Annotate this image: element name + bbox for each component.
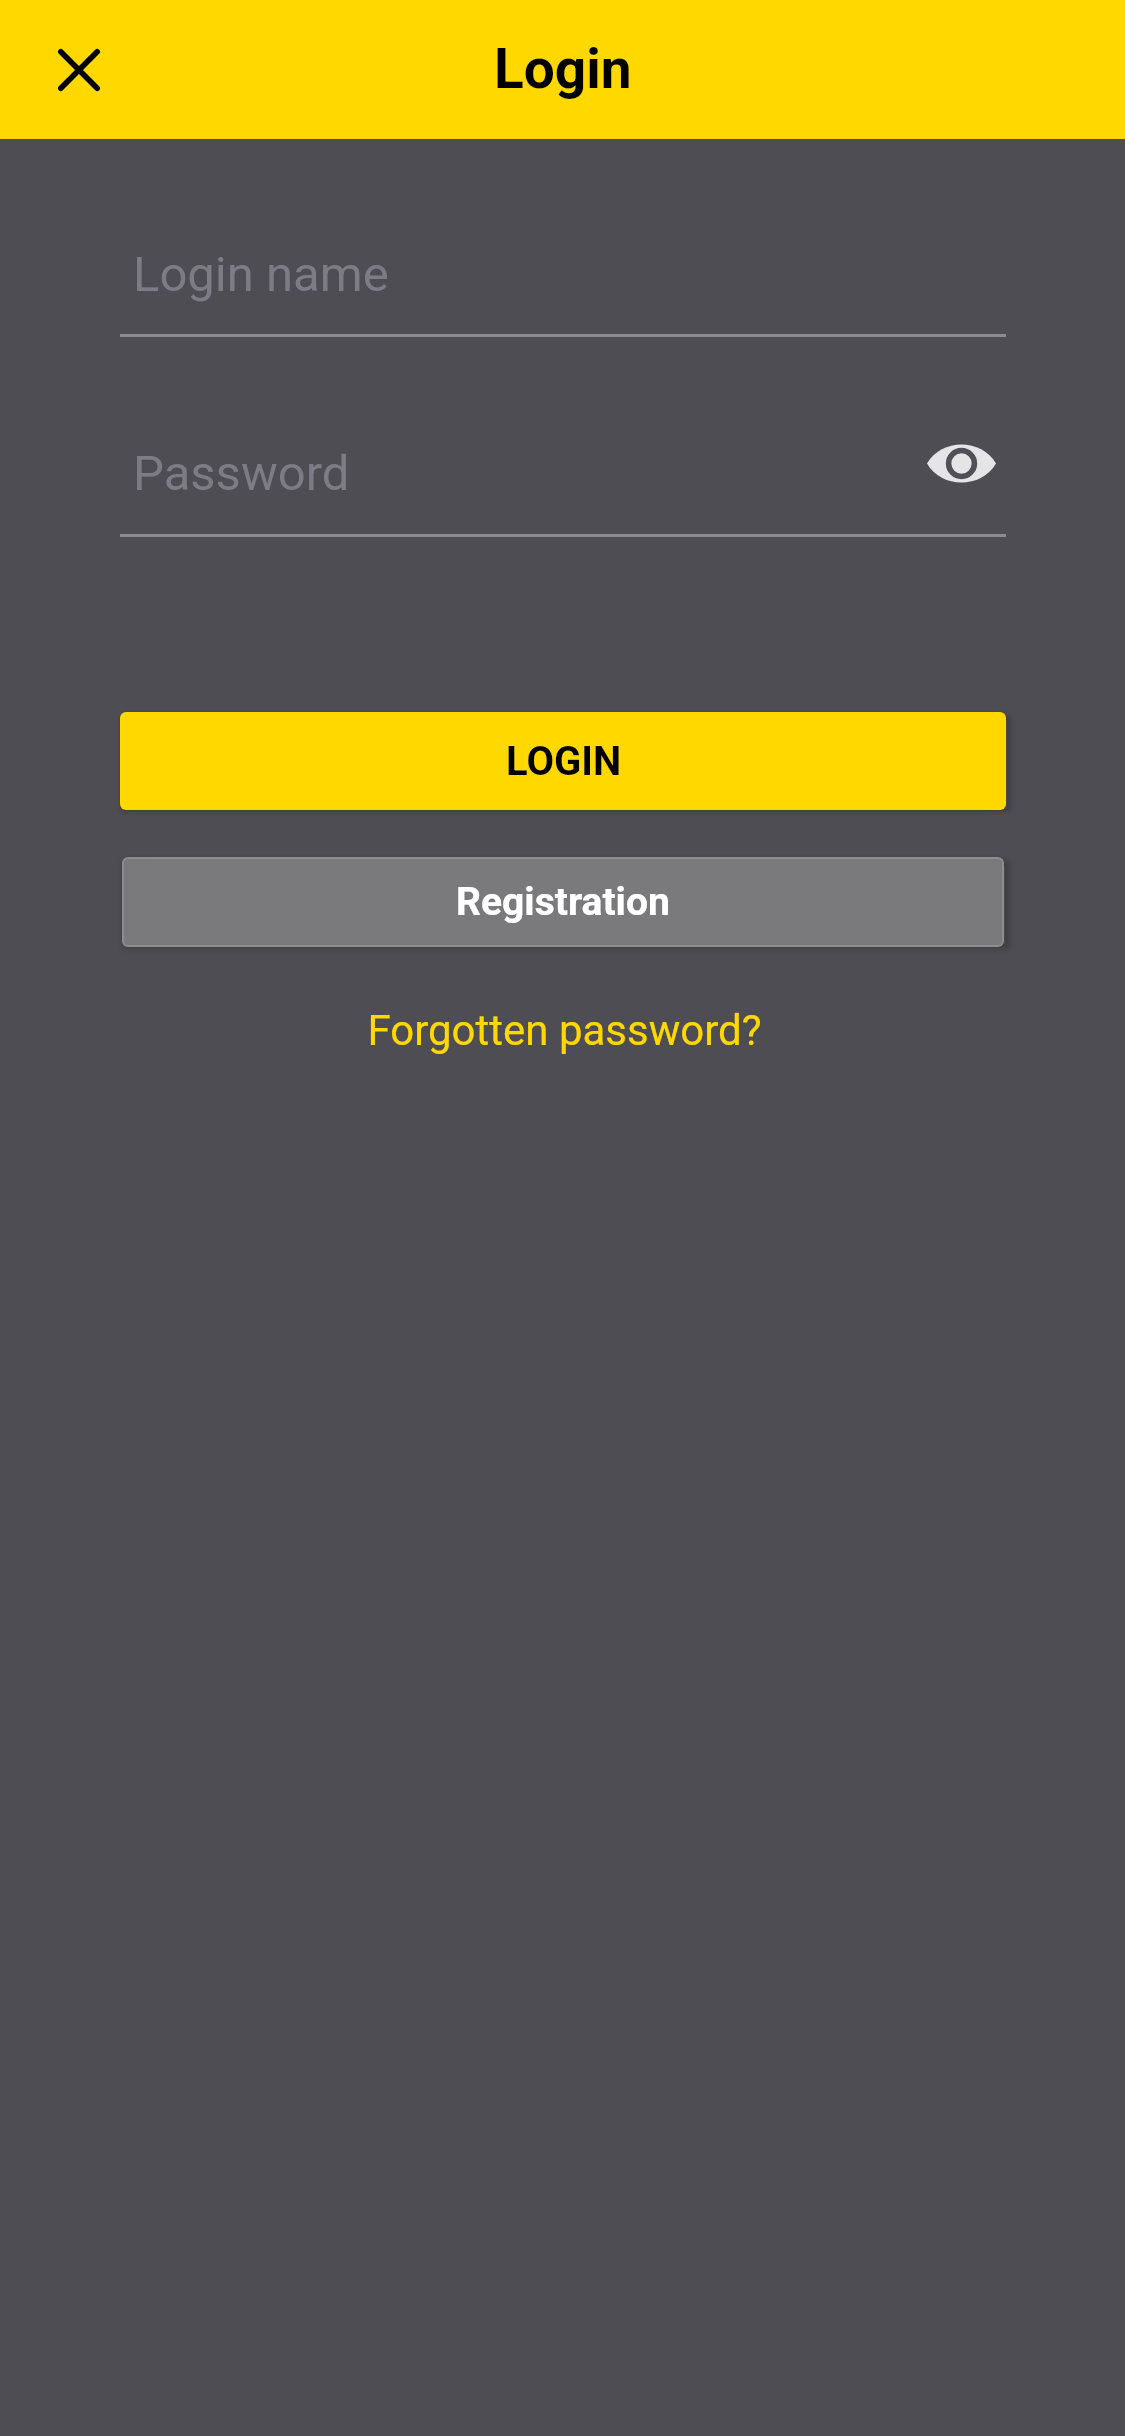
staticText: Password [133,445,350,502]
button[interactable]: LOGIN [120,712,1006,810]
staticText: Forgotten password? [367,1006,762,1055]
button[interactable]: Login name [120,234,1006,337]
staticText: Login [494,37,632,101]
staticText: Registration [456,879,670,925]
staticText: Login name [133,246,389,303]
staticText: LOGIN [506,738,622,785]
button[interactable]: Password [120,434,1006,537]
button[interactable]: Forgotten password? [328,985,798,1075]
button[interactable]: Close [31,22,127,118]
button[interactable]: Registration [122,857,1004,947]
button[interactable]: Show password [916,418,1006,508]
